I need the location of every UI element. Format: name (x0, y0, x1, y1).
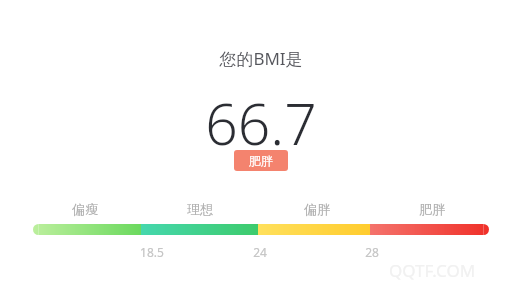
staticText: 理想 (187, 201, 213, 217)
staticText: 66.7 (205, 84, 317, 162)
staticText: 偏胖 (304, 201, 330, 217)
staticText: 偏瘦 (72, 201, 98, 217)
staticText: 肥胖 (249, 153, 273, 168)
staticText: 肥胖 (419, 201, 445, 217)
staticText: 28 (365, 244, 379, 260)
button[interactable]: 肥胖 (234, 150, 288, 171)
staticText: 18.5 (140, 244, 164, 260)
staticText: QQTF.COM (389, 259, 476, 282)
staticText: 您的BMI是 (219, 47, 303, 70)
staticText: 24 (253, 244, 267, 260)
other: BMI range scale (0, 0, 522, 284)
